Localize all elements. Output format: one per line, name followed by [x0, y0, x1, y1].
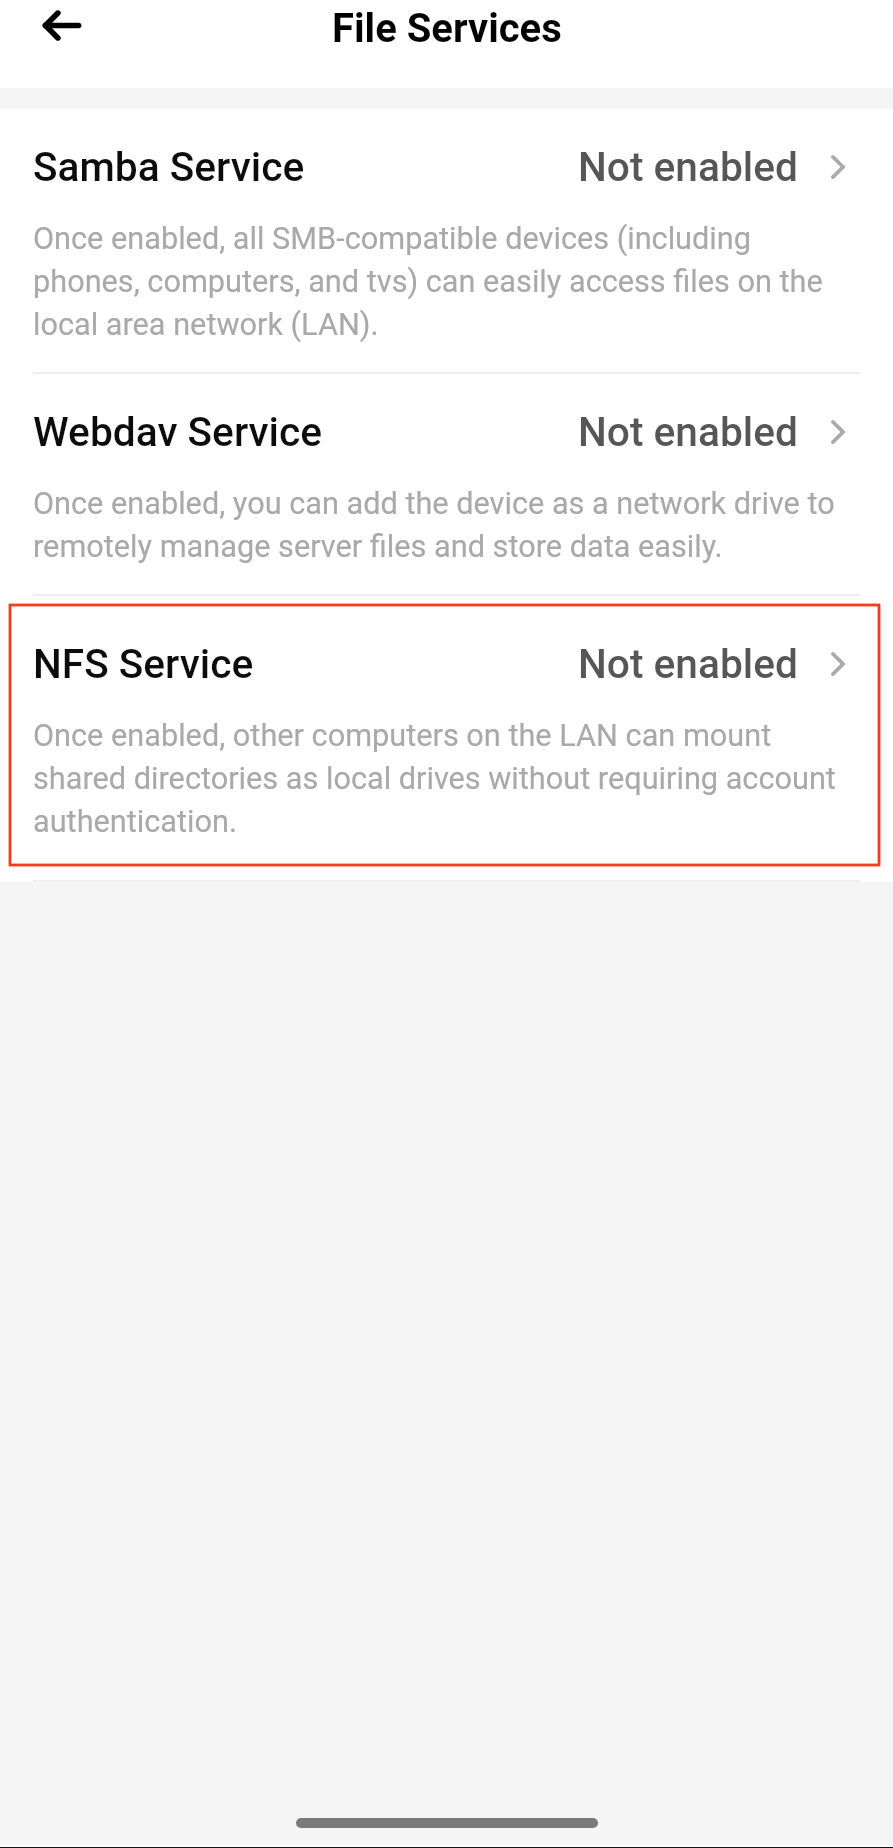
staticText: Not enabled: [578, 640, 798, 688]
staticText: Not enabled: [578, 408, 798, 456]
staticText: Webdav Service: [33, 408, 323, 456]
button[interactable]: Back: [30, 0, 94, 52]
button[interactable]: Webdav Service: [0, 374, 893, 594]
button[interactable]: Samba Service: [0, 109, 893, 372]
staticText: Once enabled, all SMB-compatible devices…: [33, 215, 845, 344]
staticText: File Services: [332, 5, 562, 52]
staticText: Not enabled: [578, 143, 798, 191]
staticText: Once enabled, you can add the device as …: [33, 480, 845, 566]
staticText: Samba Service: [33, 143, 305, 191]
button[interactable]: NFS Service: [0, 596, 893, 880]
staticText: NFS Service: [33, 640, 254, 688]
staticText: Once enabled, other computers on the LAN…: [33, 712, 845, 841]
